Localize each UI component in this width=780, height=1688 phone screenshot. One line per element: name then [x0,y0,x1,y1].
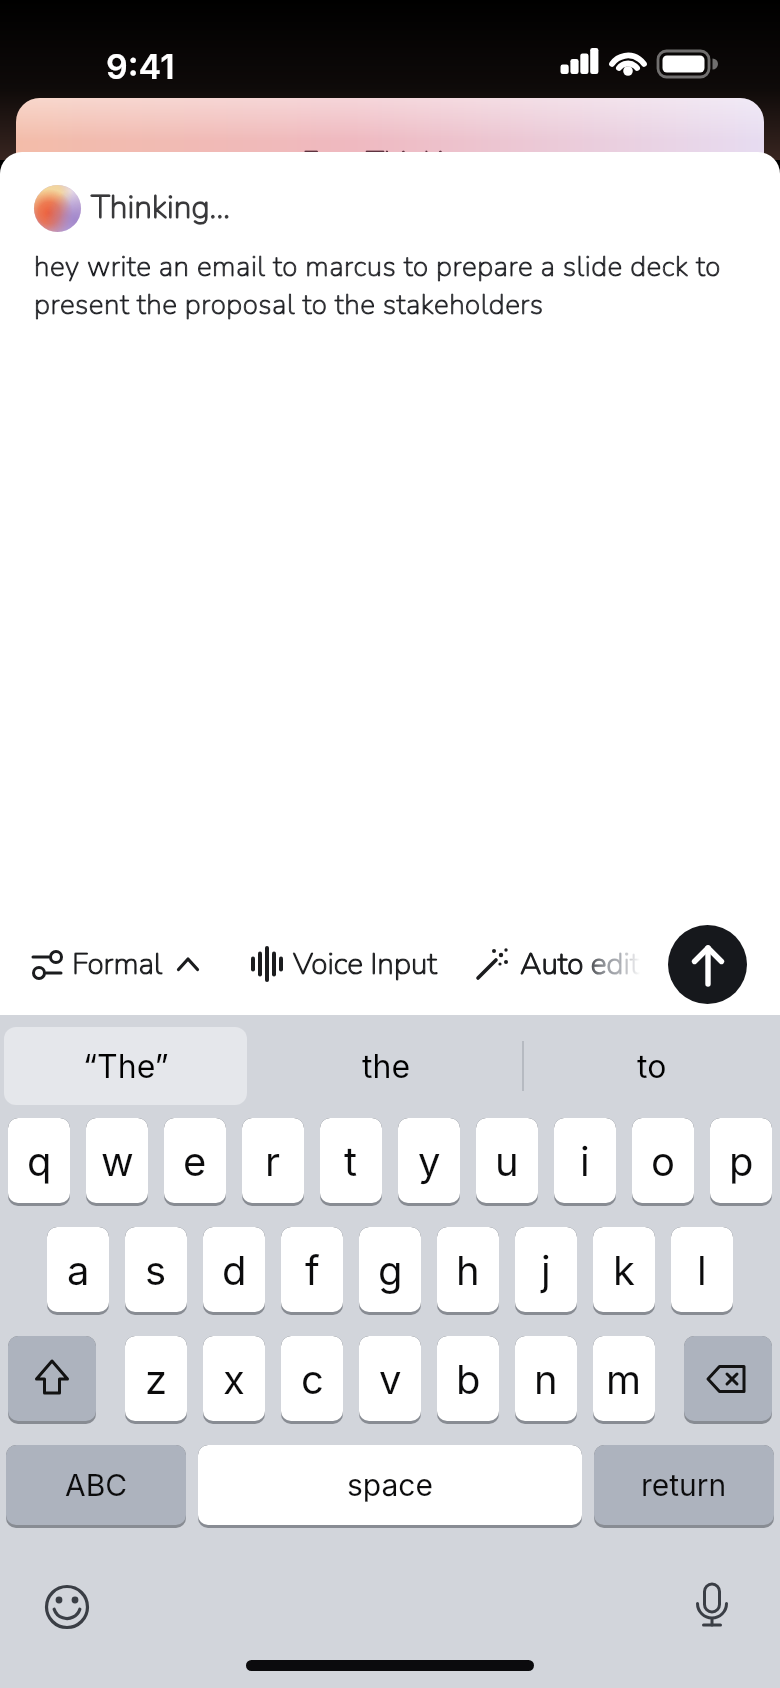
button[interactable]: m [593,1336,655,1424]
staticText: the [362,1047,411,1086]
button[interactable]: p [710,1118,772,1206]
staticText: h [456,1246,480,1294]
button[interactable]: o [632,1118,694,1206]
button[interactable]: Auto edit [476,938,640,990]
button[interactable]: w [86,1118,148,1206]
staticText: p [729,1137,754,1185]
staticText: space [347,1467,433,1503]
staticText: Formal [72,944,163,985]
staticText: m [606,1355,642,1403]
staticText: l [697,1246,707,1294]
staticText: Formal [72,944,163,985]
staticText: hey write an email to marcus to prepare … [34,248,766,324]
staticText: s [145,1246,167,1294]
button[interactable]: c [281,1336,343,1424]
button[interactable]: return [594,1445,774,1528]
staticText: g [378,1246,403,1294]
staticText: u [495,1137,519,1185]
button[interactable]: the [260,1027,512,1105]
staticText: c [301,1355,324,1403]
staticText: v [379,1355,402,1403]
button[interactable]: y [398,1118,460,1206]
staticText: t [344,1137,358,1185]
staticText: o [651,1137,675,1185]
button[interactable] [43,1583,91,1631]
button[interactable]: d [203,1227,265,1315]
button[interactable]: “The” [4,1027,247,1105]
button[interactable]: space [198,1445,582,1528]
button[interactable]: a [47,1227,109,1315]
staticText: i [580,1137,590,1185]
button[interactable] [688,1581,736,1629]
button[interactable]: g [359,1227,421,1315]
staticText: Free Thinking [302,142,478,183]
button[interactable]: k [593,1227,655,1315]
staticText: return [641,1467,727,1503]
button[interactable]: Formal [30,938,199,990]
staticText: w [101,1137,134,1185]
staticText: e [183,1137,207,1185]
button[interactable] [668,925,747,1004]
staticText: Auto edit [520,944,640,985]
button[interactable]: ABC [6,1445,186,1528]
button[interactable]: t [320,1118,382,1206]
button[interactable]: u [476,1118,538,1206]
button[interactable]: r [242,1118,304,1206]
button[interactable]: j [515,1227,577,1315]
staticText: hey write an email to marcus to prepare … [34,248,766,324]
button[interactable]: Voice Input [251,938,437,990]
staticText: Auto edit [520,944,640,985]
staticText: d [222,1246,247,1294]
button[interactable]: x [203,1336,265,1424]
staticText: x [223,1355,245,1403]
staticText: n [534,1355,558,1403]
staticText: z [145,1355,168,1403]
button[interactable]: b [437,1336,499,1424]
button[interactable]: e [164,1118,226,1206]
button[interactable]: h [437,1227,499,1315]
button[interactable]: i [554,1118,616,1206]
staticText: “The” [83,1047,169,1086]
button[interactable]: v [359,1336,421,1424]
button[interactable]: l [671,1227,733,1315]
button[interactable] [684,1336,772,1424]
staticText: r [265,1137,281,1185]
staticText: 9:41 [106,46,175,87]
button[interactable]: z [125,1336,187,1424]
button[interactable]: q [8,1118,70,1206]
button[interactable]: to [527,1027,777,1105]
staticText: j [541,1246,551,1294]
staticText: y [418,1137,441,1185]
button[interactable]: f [281,1227,343,1315]
staticText: a [67,1246,90,1294]
staticText: to [637,1047,667,1086]
staticText: f [305,1246,320,1294]
staticText: ABC [65,1467,128,1503]
button[interactable] [8,1336,96,1424]
button[interactable]: s [125,1227,187,1315]
staticText: b [456,1355,481,1403]
staticText: Thinking... [91,186,230,230]
button[interactable]: n [515,1336,577,1424]
staticText: k [613,1246,635,1294]
staticText: Thinking... [91,186,230,230]
staticText: Voice Input [293,944,437,985]
staticText: Voice Input [293,944,437,985]
staticText: q [27,1137,52,1185]
